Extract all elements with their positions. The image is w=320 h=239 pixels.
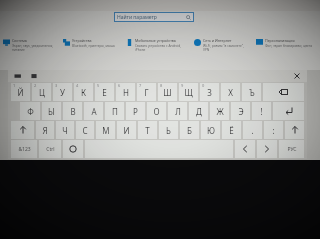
button[interactable]: . (243, 121, 262, 139)
staticText: Мобильные устройства (135, 38, 176, 43)
button[interactable] (85, 140, 233, 158)
staticText: 4 (76, 83, 79, 88)
staticText: И (123, 125, 130, 136)
button[interactable]: Л (168, 102, 187, 120)
staticText: Фон, экран блокировки, цвета (265, 44, 312, 48)
staticText: Д (196, 106, 202, 117)
staticText: Система (12, 38, 27, 43)
button[interactable]: Change keyboard layout (14, 72, 22, 80)
button[interactable]: Close keyboard (293, 72, 301, 80)
staticText: Ю (207, 125, 215, 136)
staticText: РУС (287, 146, 297, 153)
button[interactable]: П (105, 102, 124, 120)
staticText: К (81, 87, 86, 98)
button[interactable]: Ы (42, 102, 61, 120)
staticText: Устройства (72, 38, 92, 43)
staticText: Х (228, 87, 233, 98)
staticText: Э (238, 106, 244, 117)
button[interactable]: 2 (32, 83, 51, 101)
button[interactable]: Ч (56, 121, 74, 139)
staticText: Сеть и Интернет (203, 38, 232, 43)
button[interactable]: С (76, 121, 94, 139)
staticText: Ц (39, 87, 45, 98)
staticText: Л (175, 106, 181, 117)
button[interactable] (263, 83, 304, 101)
staticText: 2 (34, 83, 37, 88)
button[interactable] (63, 140, 83, 158)
button[interactable]: Я (36, 121, 54, 139)
staticText: Ч (62, 125, 68, 136)
staticText: А (91, 106, 97, 117)
staticText: Н (123, 87, 129, 98)
button[interactable]: 0 (200, 83, 219, 101)
button[interactable]: Система (3, 38, 63, 52)
button[interactable]: Х (221, 83, 240, 101)
button[interactable]: Мобильные устройства (126, 38, 186, 52)
button[interactable]: В (63, 102, 82, 120)
button[interactable]: Персонализация (256, 38, 316, 48)
button[interactable] (235, 140, 255, 158)
button[interactable] (11, 121, 34, 139)
staticText: Я (42, 125, 48, 136)
button[interactable] (273, 102, 304, 120)
button[interactable]: О (147, 102, 166, 120)
button[interactable]: Ь (159, 121, 178, 139)
staticText: 9 (181, 83, 184, 88)
button[interactable]: Ctrl (39, 140, 61, 158)
button[interactable]: : (264, 121, 283, 139)
button[interactable]: Э (231, 102, 250, 120)
staticText: Ъ (249, 87, 255, 98)
staticText: 1 (13, 83, 16, 88)
button[interactable]: Устройства (63, 38, 123, 48)
button[interactable]: И (117, 121, 136, 139)
staticText: У (60, 87, 65, 98)
staticText: 8 (160, 83, 163, 88)
button[interactable]: 4 (74, 83, 93, 101)
button[interactable]: Ъ (242, 83, 261, 101)
button[interactable] (257, 140, 277, 158)
button[interactable]: ! (252, 102, 271, 120)
button[interactable]: &123 (11, 140, 37, 158)
staticText: ! (260, 106, 263, 117)
button[interactable]: 1 (11, 83, 30, 101)
staticText: Bluetooth, принтеры, мышь (72, 44, 115, 48)
staticText: : (272, 125, 275, 136)
button[interactable]: Найти параметр (114, 12, 194, 22)
button[interactable] (285, 121, 304, 139)
staticText: Ь (166, 125, 171, 136)
button[interactable]: Dock keyboard (30, 72, 38, 80)
staticText: Г (144, 87, 149, 98)
button[interactable]: Ё (222, 121, 241, 139)
staticText: Б (187, 125, 192, 136)
staticText: П (112, 106, 118, 117)
button[interactable]: Ж (210, 102, 229, 120)
button[interactable]: Б (180, 121, 199, 139)
button[interactable]: 6 (116, 83, 135, 101)
button[interactable]: 7 (137, 83, 156, 101)
staticText: Й (17, 87, 24, 98)
button[interactable]: 9 (179, 83, 198, 101)
staticText: 6 (118, 83, 121, 88)
button[interactable]: 8 (158, 83, 177, 101)
staticText: Ctrl (46, 146, 55, 153)
staticText: Ы (48, 106, 55, 117)
button[interactable]: Ф (20, 102, 40, 120)
button[interactable]: А (84, 102, 103, 120)
button[interactable]: Д (189, 102, 208, 120)
staticText: . (251, 125, 254, 136)
button[interactable]: Сеть и Интернет (194, 38, 254, 52)
staticText: Р (133, 106, 138, 117)
button[interactable]: 3 (53, 83, 72, 101)
staticText: М (102, 125, 110, 136)
button[interactable]: 5 (95, 83, 114, 101)
staticText: Щ (184, 87, 193, 98)
staticText: Найти параметр (117, 14, 157, 21)
staticText: Ф (27, 106, 34, 117)
button[interactable]: РУС (279, 140, 304, 158)
button[interactable]: Т (138, 121, 157, 139)
button[interactable]: Ю (201, 121, 220, 139)
staticText: Wi-Fi, режим "в самолете", VPN (203, 44, 244, 52)
staticText: О (153, 106, 160, 117)
button[interactable]: М (96, 121, 115, 139)
button[interactable]: Р (126, 102, 145, 120)
